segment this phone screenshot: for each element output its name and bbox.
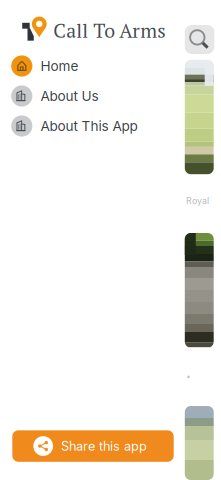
button[interactable]: About This App — [0, 111, 183, 141]
staticText: Share this app — [61, 438, 147, 454]
button[interactable]: Home — [0, 51, 183, 81]
button[interactable]: Share this app — [12, 430, 174, 462]
staticText: About This App — [41, 118, 138, 134]
staticText: About Us — [41, 88, 99, 104]
staticText: Royal — [186, 195, 209, 206]
button[interactable]: Search — [185, 25, 214, 54]
staticText: Call To Arms — [53, 17, 165, 43]
button[interactable]: About Us — [0, 81, 183, 111]
staticText: Home — [41, 58, 79, 74]
staticText: • — [186, 371, 191, 381]
